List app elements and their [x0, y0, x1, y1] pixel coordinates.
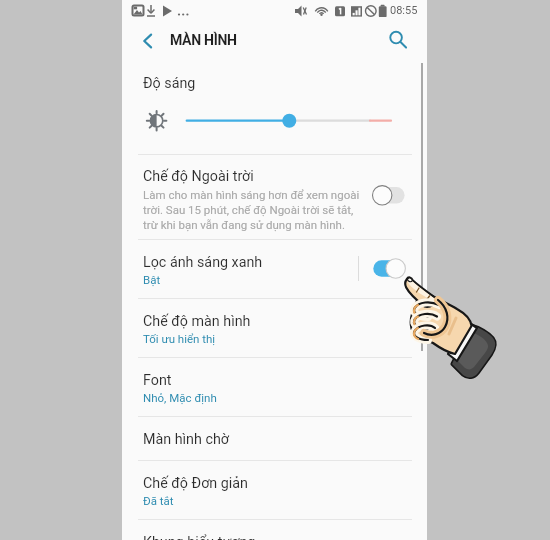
staticText: Đã tắt — [143, 494, 174, 507]
staticText: Làm cho màn hình sáng hơn để xem ngoài t… — [143, 188, 365, 232]
staticText: 08:55 — [390, 4, 418, 17]
staticText: Độ sáng — [143, 75, 196, 92]
staticText: Chế độ màn hình — [143, 313, 251, 330]
button[interactable]: Chế độ màn hình — [122, 298, 427, 357]
button[interactable]: Lọc ánh sáng xanh — [122, 239, 427, 298]
button[interactable]: Brightness slider — [140, 105, 402, 137]
staticText: Bật — [143, 273, 161, 286]
staticText: Lọc ánh sáng xanh — [143, 254, 263, 271]
staticText: Chế độ Ngoài trời — [143, 168, 254, 185]
button[interactable]: Back — [130, 23, 166, 59]
staticText: Tối ưu hiển thị — [143, 332, 216, 345]
button[interactable]: Turn off — [365, 239, 415, 298]
button[interactable]: Chế độ Đơn giản — [122, 460, 427, 519]
button[interactable]: Màn hình chờ — [122, 416, 427, 460]
button[interactable]: Search — [380, 22, 416, 58]
staticText: Font — [143, 372, 172, 389]
staticText: Màn hình chờ — [143, 431, 229, 448]
button[interactable]: Khung biểu tượng — [122, 519, 427, 540]
staticText: Nhỏ, Mặc định — [143, 391, 217, 404]
button[interactable]: Font — [122, 357, 427, 416]
staticText: Chế độ Đơn giản — [143, 475, 248, 492]
staticText: MÀN HÌNH — [170, 32, 237, 49]
button[interactable]: Chế độ Ngoài trời — [122, 153, 427, 239]
button[interactable]: Turn on — [365, 153, 415, 239]
staticText: Khung biểu tượng — [143, 534, 256, 540]
